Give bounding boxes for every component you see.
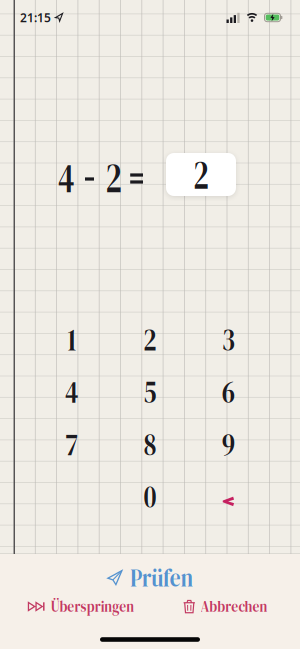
button[interactable]: Löschen — [189, 470, 267, 523]
button[interactable]: Überspringen — [28, 596, 140, 617]
staticText: 4 — [63, 370, 80, 414]
staticText: 21:15 — [20, 9, 51, 25]
button[interactable]: Prüfen — [107, 560, 199, 595]
staticText: 4 — [55, 149, 78, 206]
staticText: 9 — [220, 422, 237, 466]
staticText: 2 — [102, 149, 124, 206]
button[interactable]: 1 — [33, 313, 111, 365]
staticText: 7 — [64, 422, 80, 466]
button[interactable]: 7 — [33, 418, 111, 470]
staticText: Abbrechen — [196, 596, 272, 617]
staticText: 1 — [66, 317, 77, 361]
button[interactable]: 5 — [111, 365, 189, 418]
staticText: 2 — [190, 147, 211, 202]
button[interactable]: 2 — [111, 313, 189, 365]
staticText: 3 — [220, 317, 237, 361]
button[interactable]: 0 — [111, 470, 189, 523]
button[interactable]: 3 — [189, 313, 267, 365]
staticText: Prüfen — [124, 560, 199, 595]
button[interactable]: 9 — [189, 418, 267, 470]
button[interactable]: 4 — [33, 365, 111, 418]
staticText: 2 — [141, 317, 158, 361]
staticText: 6 — [220, 370, 237, 414]
staticText: Überspringen — [45, 596, 140, 617]
button[interactable]: 8 — [111, 418, 189, 470]
button[interactable]: Abbrechen — [183, 596, 272, 617]
staticText: 8 — [142, 422, 158, 466]
button[interactable]: 6 — [189, 365, 267, 418]
staticText: 0 — [142, 474, 158, 518]
staticText: 5 — [141, 370, 158, 414]
